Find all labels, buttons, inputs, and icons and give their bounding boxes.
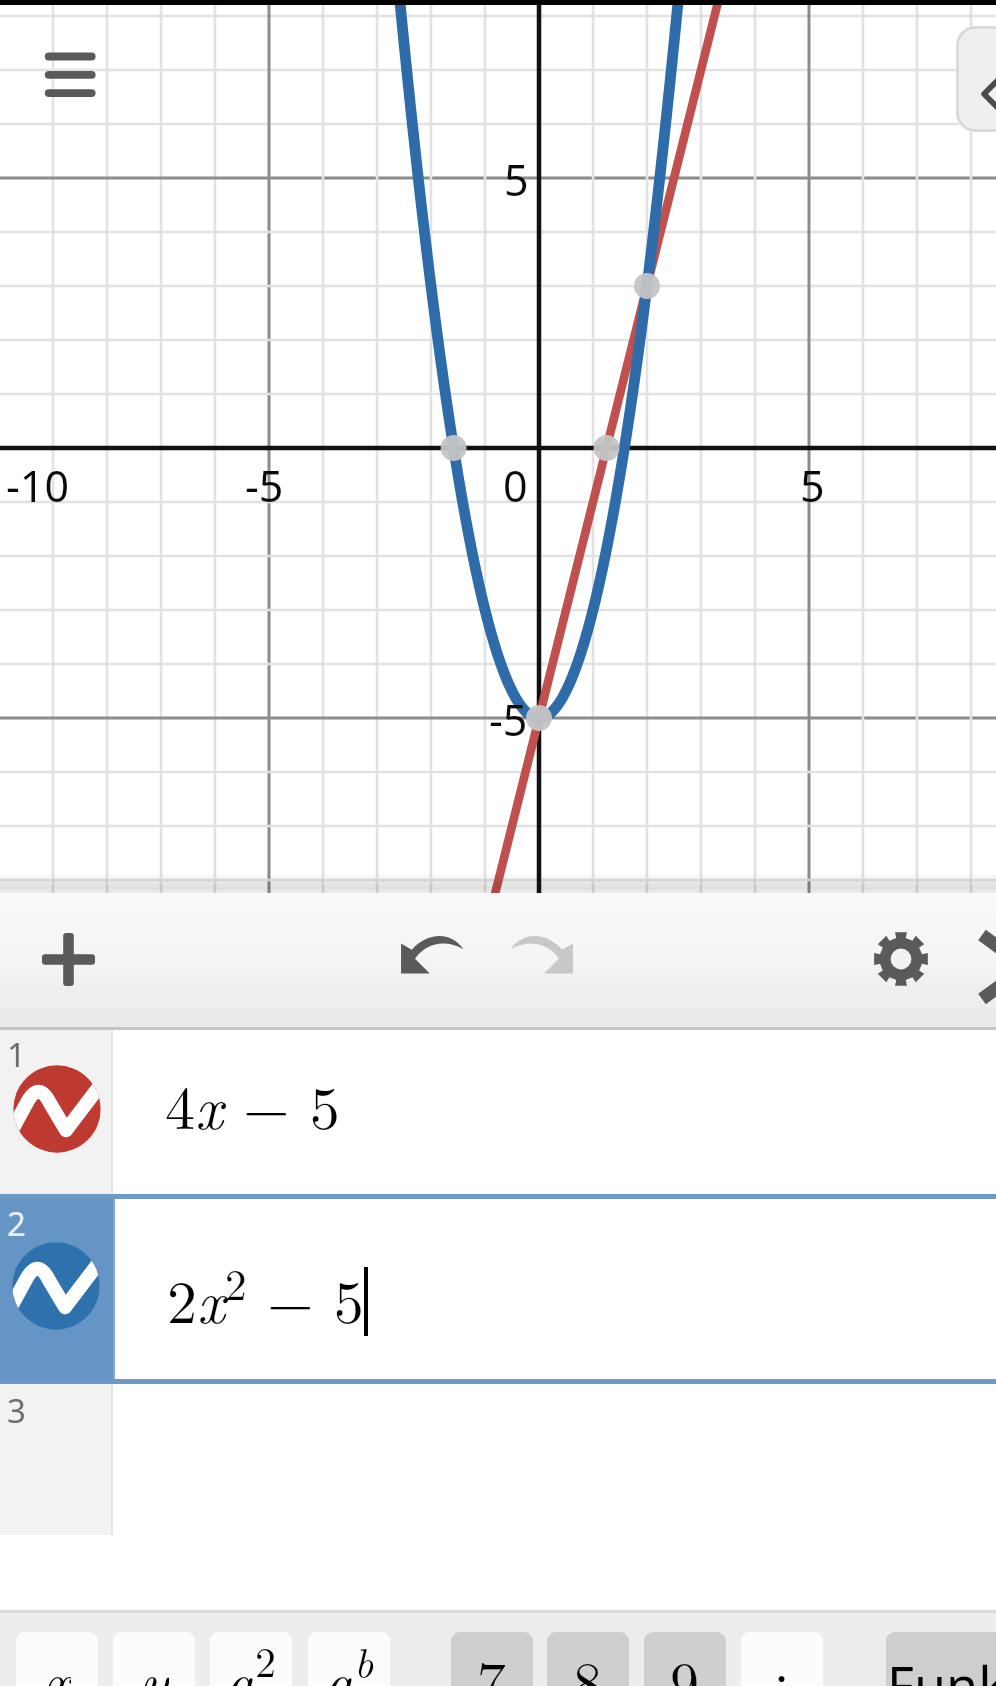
staticText: 2 <box>167 1255 197 1340</box>
button[interactable]: 8 <box>547 1632 629 1686</box>
staticText: 1 <box>7 1032 26 1077</box>
button[interactable]: 3 <box>0 1384 996 1535</box>
button[interactable]: 7 <box>451 1632 533 1686</box>
button[interactable]: a <box>210 1632 292 1686</box>
staticText: 2 <box>7 1201 26 1246</box>
button[interactable]: a <box>308 1632 390 1686</box>
button[interactable]: ÷ <box>741 1632 823 1686</box>
staticText: Funkt <box>887 1649 996 1686</box>
button[interactable]: 1 <box>0 1030 996 1194</box>
staticText: a <box>225 1638 255 1686</box>
button[interactable]: 2 <box>0 1199 996 1379</box>
button[interactable]: Collapse <box>968 919 996 999</box>
staticText: 2 <box>225 1251 247 1312</box>
staticText: 8 <box>573 1638 603 1686</box>
staticText: 2 <box>255 1632 277 1686</box>
staticText: a <box>324 1638 354 1686</box>
staticText: -5 <box>245 456 284 515</box>
staticText: x <box>197 1255 225 1340</box>
staticText: ÷ <box>759 1638 805 1686</box>
button[interactable]: Redo <box>502 914 584 996</box>
staticText: 7 <box>477 1638 507 1686</box>
staticText: -5 <box>489 690 528 749</box>
button[interactable]: x <box>16 1632 98 1686</box>
staticText: x <box>44 1638 71 1686</box>
staticText: 4 <box>165 1061 195 1146</box>
staticText: 5 <box>504 150 529 209</box>
staticText: − 5 <box>247 1255 364 1340</box>
staticText: x <box>195 1061 223 1146</box>
staticText: 3 <box>7 1388 26 1433</box>
button[interactable]: Funkt <box>886 1632 996 1686</box>
staticText: 0 <box>503 456 528 515</box>
button[interactable]: Undo <box>390 914 472 996</box>
staticText: -10 <box>6 456 70 515</box>
staticText: − 5 <box>223 1061 340 1146</box>
staticText: y <box>140 1638 169 1686</box>
button[interactable]: Add <box>28 919 108 999</box>
button[interactable]: 9 <box>644 1632 726 1686</box>
button[interactable]: y <box>113 1632 195 1686</box>
staticText: 5 <box>800 456 825 515</box>
staticText: b <box>354 1632 374 1686</box>
staticText: 9 <box>670 1638 700 1686</box>
button[interactable]: Settings <box>856 914 946 1004</box>
button[interactable]: Backspace <box>956 26 996 132</box>
button[interactable]: Menu <box>28 37 112 113</box>
